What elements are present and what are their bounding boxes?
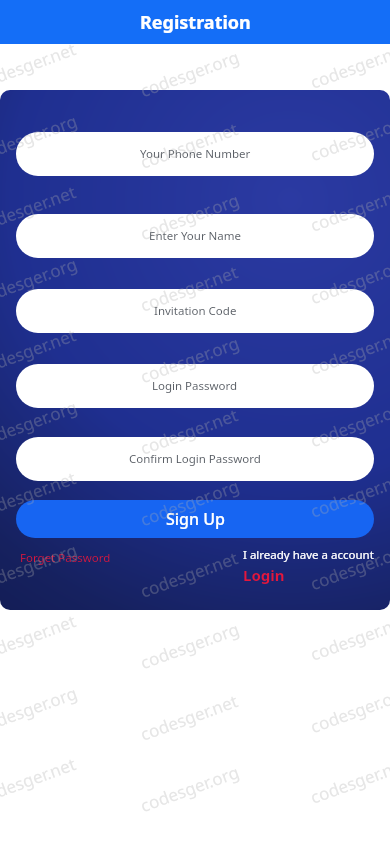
staticText: Login Password [152,378,238,394]
staticText: codesger.org [307,109,390,166]
staticText: I already have a account [243,547,374,563]
staticText: codesger.org [0,681,81,738]
staticText: codesger.net [307,37,390,94]
staticText: Sign Up [166,508,225,530]
staticText: Your Phone Number [140,146,251,162]
staticText: codesger.net [137,689,241,746]
button[interactable]: Your Phone Number [16,132,374,176]
staticText: codesger.org [307,252,390,309]
staticText: codesger.net [307,323,390,380]
staticText: codesger.org [137,474,243,531]
staticText: codesger.org [307,395,390,452]
staticText: Confirm Login Password [129,451,261,467]
staticText: Invitation Code [154,303,237,319]
staticText: Enter Your Name [149,228,242,244]
button[interactable]: Login [243,565,285,585]
staticText: codesger.net [307,466,390,523]
staticText: codesger.net [0,609,79,666]
button[interactable]: Sign Up [16,500,374,538]
staticText: codesger.net [0,37,79,94]
staticText: codesger.org [0,109,81,166]
button[interactable]: Confirm Login Password [16,437,374,481]
button[interactable]: Forget Password [20,550,111,566]
staticText: codesger.net [0,752,79,809]
button[interactable]: Invitation Code [16,289,374,333]
staticText: codesger.net [0,466,79,523]
staticText: codesger.net [307,609,390,666]
button[interactable]: Enter Your Name [16,214,374,258]
staticText: codesger.net [0,180,79,237]
staticText: codesger.net [0,323,79,380]
staticText: codesger.org [137,331,243,388]
staticText: codesger.net [307,180,390,237]
staticText: codesger.org [137,45,243,102]
staticText: codesger.net [137,117,241,174]
button[interactable]: Login Password [16,364,374,408]
staticText: codesger.net [137,260,241,317]
staticText: codesger.org [0,538,81,595]
staticText: codesger.org [307,681,390,738]
staticText: codesger.org [137,760,243,817]
staticText: codesger.net [307,752,390,809]
staticText: codesger.org [0,395,81,452]
staticText: codesger.net [137,546,241,603]
staticText: codesger.org [0,252,81,309]
staticText: codesger.org [137,188,243,245]
staticText: codesger.org [137,617,243,674]
staticText: codesger.org [307,538,390,595]
staticText: codesger.net [137,403,241,460]
staticText: Registration [140,10,251,35]
